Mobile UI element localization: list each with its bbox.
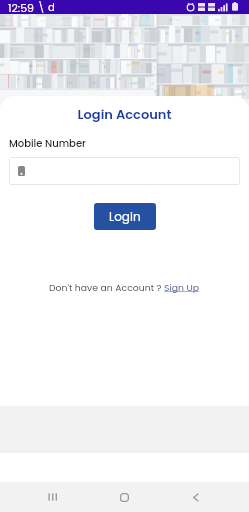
button[interactable]: Login [94, 203, 156, 230]
button[interactable]: Back [160, 482, 232, 512]
staticText: \ [38, 0, 45, 14]
button[interactable]: Recents [17, 482, 88, 512]
staticText: 12:59 [8, 0, 35, 14]
staticText: Login [109, 208, 141, 225]
staticText: Don't have an Account ? [49, 281, 164, 294]
staticText: Mobile Number [9, 136, 86, 150]
staticText: Login Account [0, 105, 249, 123]
button[interactable]: Sign Up [164, 281, 200, 294]
button[interactable] [9, 157, 240, 185]
button[interactable]: Home [88, 482, 160, 512]
staticText: d [48, 0, 55, 14]
